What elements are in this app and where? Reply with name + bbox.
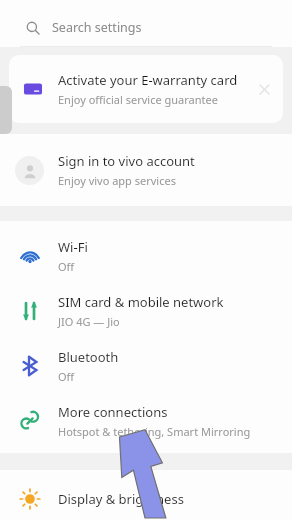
staticText: Off <box>58 369 75 384</box>
staticText: Search settings <box>52 19 142 36</box>
button[interactable]: SIM card & mobile network <box>0 283 292 338</box>
staticText: Off <box>58 259 75 274</box>
staticText: Display & brightness <box>58 490 184 508</box>
staticText: More connections <box>58 403 168 421</box>
staticText: Enjoy vivo app services <box>58 173 176 188</box>
button[interactable]: More connections <box>0 393 292 448</box>
button[interactable]: Display & brightness <box>15 477 292 520</box>
button[interactable]: Wi-Fi <box>0 228 292 283</box>
button[interactable]: Sign in to vivo account <box>15 134 292 206</box>
staticText: Wi-Fi <box>58 238 88 256</box>
button[interactable]: Activate your E-warranty card <box>9 55 283 123</box>
staticText: Enjoy official service guarantee <box>58 92 218 107</box>
staticText: Hotspot & tethering, Smart Mirroring <box>58 424 251 439</box>
staticText: SIM card & mobile network <box>58 293 224 311</box>
staticText: Sign in to vivo account <box>58 152 195 170</box>
button[interactable]: Dismiss <box>251 76 277 102</box>
staticText: Activate your E-warranty card <box>58 71 238 89</box>
button[interactable]: Search settings <box>0 8 292 47</box>
staticText: JIO 4G — Jio <box>58 314 120 329</box>
staticText: Bluetooth <box>58 348 119 366</box>
button[interactable]: Bluetooth <box>0 338 292 393</box>
